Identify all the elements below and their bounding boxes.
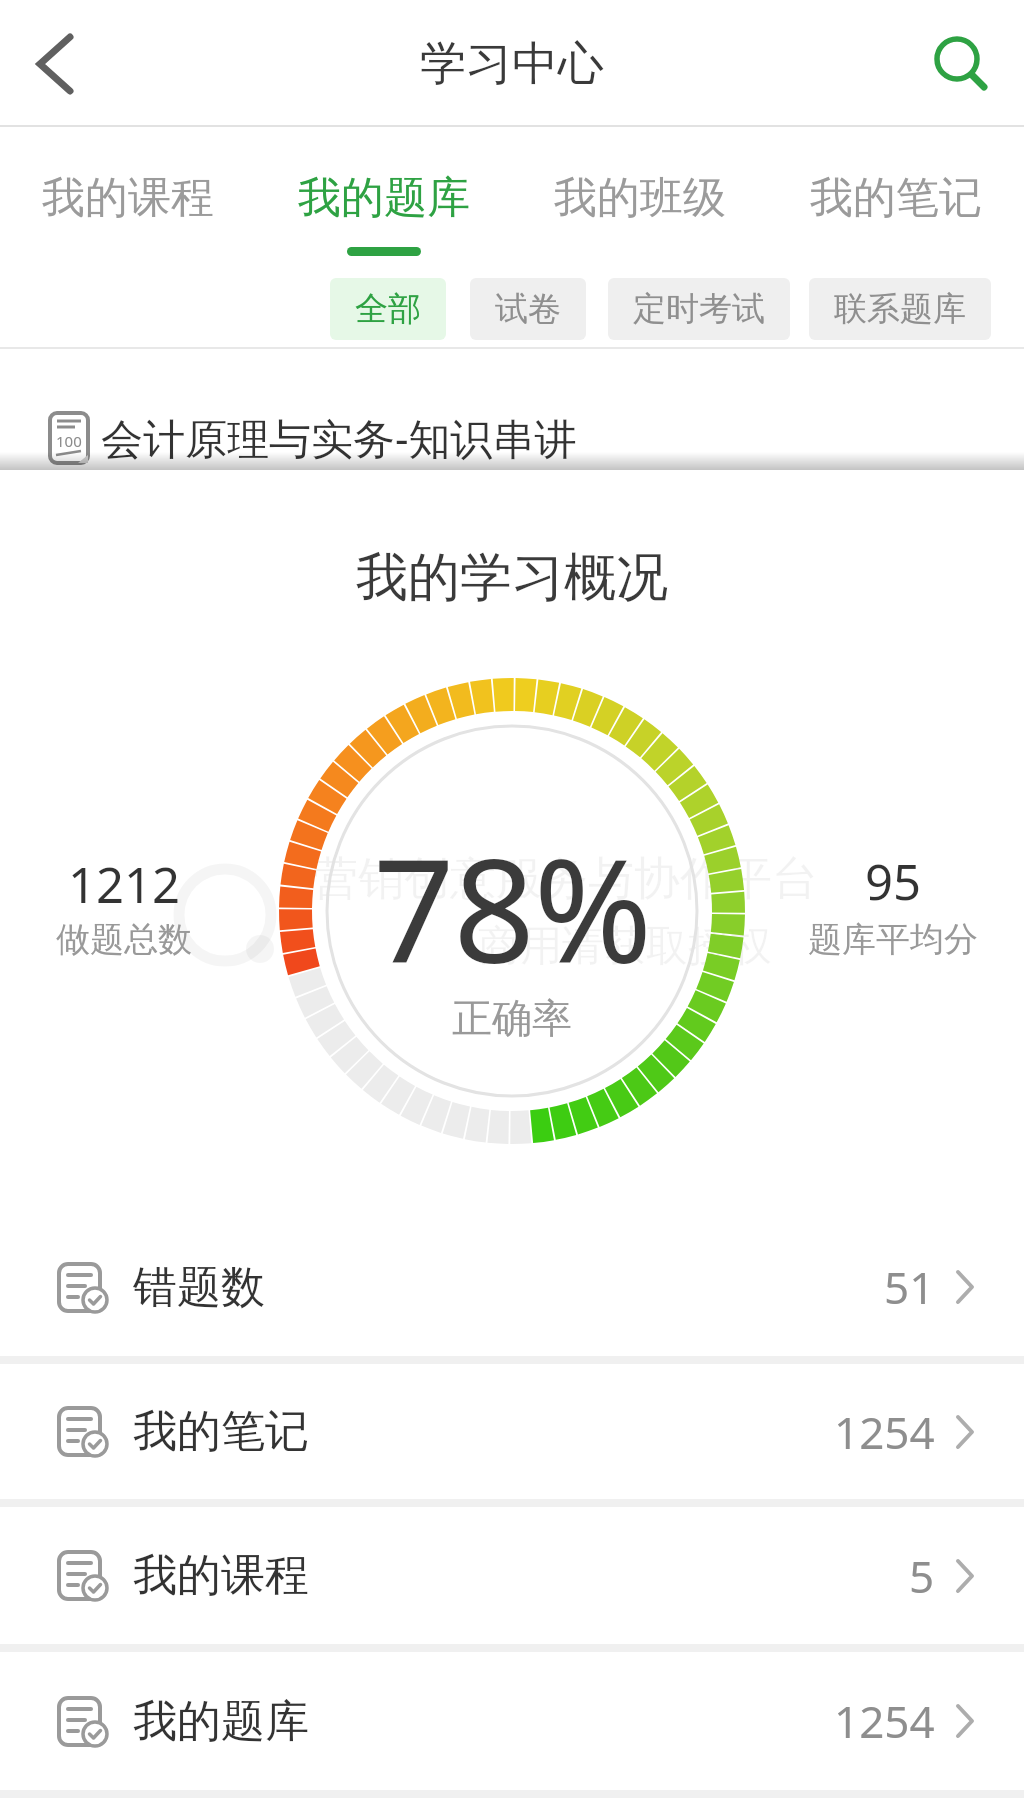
button[interactable]: 我的课程: [0, 1507, 1024, 1644]
staticText: 学习中心: [420, 35, 604, 93]
staticText: 正确率: [452, 993, 572, 1043]
staticText: 95: [865, 848, 922, 915]
staticText: 78%: [373, 810, 651, 1005]
button[interactable]: 联系题库: [809, 278, 991, 340]
staticText: 会计原理与实务-知识串讲: [101, 409, 577, 466]
button[interactable]: 定时考试: [608, 278, 790, 340]
staticText: 定时考试: [633, 288, 765, 330]
staticText: 题库平均分: [808, 918, 978, 961]
staticText: 1254: [834, 1691, 935, 1751]
staticText: 我的题库: [133, 1694, 309, 1749]
button[interactable]: 错题数: [0, 1218, 1024, 1356]
staticText: 商用请获取授权: [478, 920, 772, 973]
staticText: 我的课程: [133, 1548, 309, 1603]
button[interactable]: 我的笔记: [0, 1364, 1024, 1499]
staticText: 我的班级: [554, 171, 726, 225]
button[interactable]: 100: [0, 349, 1024, 470]
staticText: 全部: [355, 288, 421, 330]
staticText: 试卷: [495, 288, 561, 330]
button[interactable]: 我的班级: [512, 127, 768, 256]
staticText: 我的学习概况: [356, 545, 668, 611]
staticText: 错题数: [133, 1260, 265, 1315]
staticText: 做题总数: [56, 918, 192, 961]
button[interactable]: [928, 31, 994, 97]
staticText: 51: [884, 1257, 935, 1317]
button[interactable]: 我的题库: [0, 1652, 1024, 1790]
button[interactable]: 我的课程: [0, 127, 256, 256]
staticText: 5: [909, 1546, 935, 1606]
staticText: 我的笔记: [810, 171, 982, 225]
staticText: 1254: [834, 1402, 935, 1462]
staticText: 营销创意服务与协作平台: [312, 850, 818, 908]
staticText: 联系题库: [834, 288, 966, 330]
staticText: 我的课程: [42, 171, 214, 225]
staticText: 我的题库: [298, 171, 470, 225]
button[interactable]: 试卷: [470, 278, 586, 340]
button[interactable]: 我的笔记: [768, 127, 1024, 256]
staticText: 100: [56, 431, 82, 451]
staticText: 1212: [68, 851, 181, 918]
button[interactable]: 全部: [330, 278, 446, 340]
staticText: 我的笔记: [133, 1404, 309, 1459]
button[interactable]: [24, 34, 84, 94]
button[interactable]: 我的题库: [256, 127, 512, 256]
